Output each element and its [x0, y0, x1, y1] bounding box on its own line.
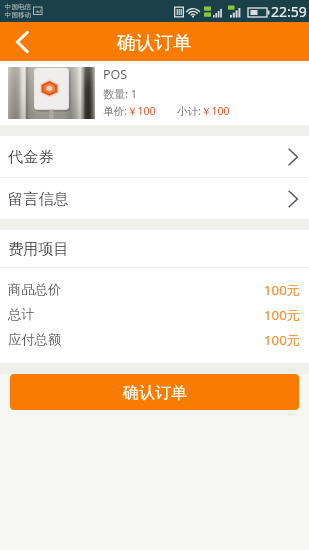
staticText: 确认订单 — [123, 383, 187, 403]
staticText: 商品总价 — [8, 281, 62, 298]
staticText: POS — [103, 66, 128, 83]
staticText: 小计: — [177, 104, 201, 118]
staticText: 100元 — [264, 306, 301, 324]
staticText: 22:59 — [271, 2, 307, 21]
staticText: 留言信息 — [8, 189, 69, 208]
button[interactable]: Back — [0, 22, 44, 61]
staticText: 总计 — [8, 306, 35, 323]
button[interactable]: 代金券 — [0, 136, 309, 177]
staticText: 确认订单 — [117, 31, 192, 55]
button[interactable]: 留言信息 — [0, 178, 309, 219]
staticText: ￥100 — [127, 104, 156, 118]
button[interactable]: 确认订单 — [10, 374, 299, 410]
staticText: 代金券 — [8, 147, 54, 166]
staticText: 数量: 1 — [103, 86, 138, 101]
staticText: 中国电信 — [5, 3, 31, 11]
staticText: 100元 — [264, 281, 301, 299]
staticText: 单价: — [103, 104, 127, 118]
staticText: 100元 — [264, 331, 301, 349]
staticText: 应付总额 — [8, 331, 62, 348]
staticText: ￥100 — [201, 104, 230, 118]
staticText: 费用项目 — [8, 239, 69, 258]
staticText: 中国移动 — [5, 11, 31, 19]
